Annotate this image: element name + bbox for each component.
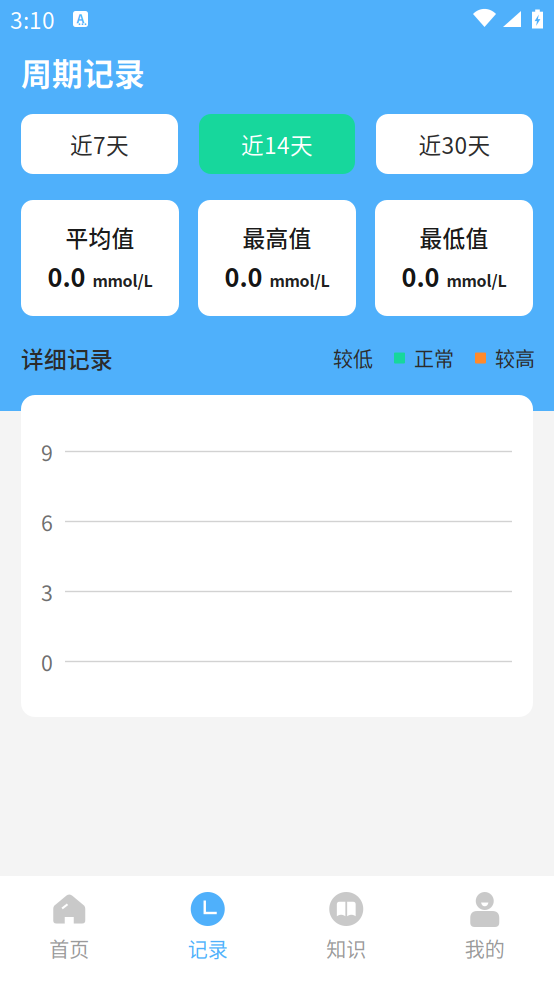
staticText: 近30天 xyxy=(418,128,490,160)
staticText: A xyxy=(76,9,84,27)
staticText: 首页 xyxy=(49,934,89,963)
staticText: 近14天 xyxy=(241,128,313,160)
staticText: 近7天 xyxy=(70,128,129,160)
button[interactable]: 知识 xyxy=(277,876,415,984)
staticText: mmol/L xyxy=(269,268,329,292)
button[interactable]: 近30天 xyxy=(376,114,533,174)
button[interactable]: 首页 xyxy=(0,876,138,984)
staticText: 周期记录 xyxy=(21,50,145,94)
staticText: 较高 xyxy=(495,343,535,372)
staticText: 0.0 xyxy=(401,258,439,294)
button[interactable]: 记录 xyxy=(138,876,277,984)
staticText: 知识 xyxy=(326,934,366,963)
staticText: 正常 xyxy=(414,343,454,372)
staticText: 6 xyxy=(41,507,53,537)
staticText: 最低值 xyxy=(419,221,488,253)
staticText: 较低 xyxy=(333,343,373,372)
button[interactable]: 近14天 xyxy=(199,114,355,174)
staticText: 0.0 xyxy=(224,258,262,294)
staticText: 3 xyxy=(41,577,53,607)
staticText: 平均值 xyxy=(65,221,134,253)
staticText: 3:10 xyxy=(10,3,55,35)
button[interactable]: 近7天 xyxy=(21,114,178,174)
staticText: 0 xyxy=(41,647,53,677)
staticText: 最高值 xyxy=(242,221,311,253)
staticText: mmol/L xyxy=(446,268,506,292)
staticText: 详细记录 xyxy=(21,342,113,374)
staticText: 9 xyxy=(41,437,53,467)
staticText: 我的 xyxy=(465,934,505,963)
button[interactable]: 我的 xyxy=(415,876,554,984)
staticText: mmol/L xyxy=(92,268,152,292)
staticText: 记录 xyxy=(188,934,228,963)
staticText: 0.0 xyxy=(47,258,85,294)
